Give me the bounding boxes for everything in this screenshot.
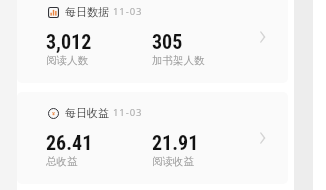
button[interactable]: 每日数据	[17, 0, 288, 83]
staticText: 总收益	[46, 155, 78, 168]
other: More	[259, 31, 266, 43]
staticText: 阅读收益	[152, 155, 194, 168]
other: More	[259, 132, 266, 144]
staticText: 3,012	[46, 30, 92, 53]
staticText: 11-03	[113, 106, 143, 119]
staticText: 305	[152, 30, 183, 53]
staticText: 每日收益	[65, 106, 109, 120]
staticText: 21.91	[152, 131, 199, 154]
staticText: 11-03	[113, 5, 143, 18]
staticText: 阅读人数	[46, 54, 88, 67]
staticText: 每日数据	[65, 5, 109, 19]
staticText: 26.41	[46, 131, 93, 154]
button[interactable]: 每日收益	[17, 92, 288, 184]
staticText: 加书架人数	[152, 54, 205, 67]
